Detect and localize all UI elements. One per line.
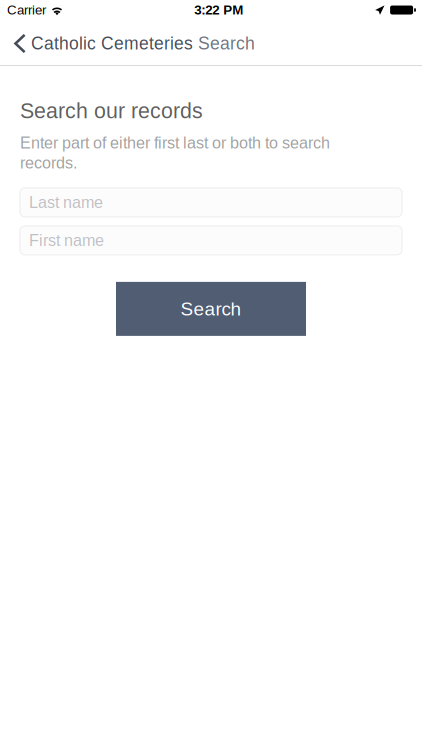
staticText: Search <box>180 298 241 319</box>
button[interactable]: Back to Catholic Cemeteries <box>0 23 195 63</box>
staticText: Search our records <box>20 99 203 123</box>
button[interactable]: Search <box>116 282 306 336</box>
staticText: Search <box>198 34 255 53</box>
staticText: 3:22 PM <box>194 3 243 17</box>
button[interactable]: First name <box>20 226 402 255</box>
staticText: Last name <box>29 193 103 211</box>
staticText: records. <box>20 154 77 172</box>
staticText: Carrier <box>7 3 46 17</box>
staticText: First name <box>29 231 104 249</box>
button[interactable]: Last name <box>20 188 402 217</box>
staticText: Enter part of either first last or both … <box>20 134 330 152</box>
staticText: Catholic Cemeteries <box>31 34 193 53</box>
